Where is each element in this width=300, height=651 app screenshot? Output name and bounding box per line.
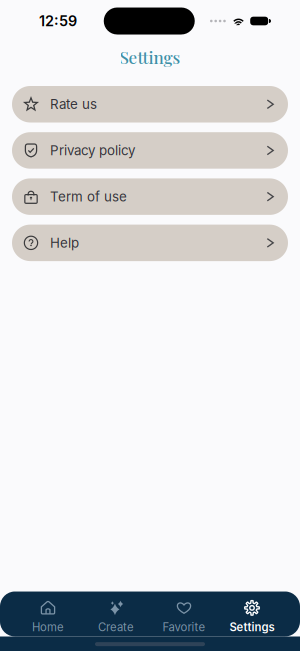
button[interactable]: Rate us xyxy=(12,86,288,122)
button[interactable]: Create xyxy=(82,600,150,634)
button[interactable]: Term of use xyxy=(12,178,288,215)
button[interactable]: Home xyxy=(14,600,82,634)
staticText: Privacy policy xyxy=(50,142,135,158)
staticText: 12:59 xyxy=(39,12,77,30)
staticText: Settings xyxy=(119,46,180,68)
staticText: Help xyxy=(50,235,79,251)
staticText: Create xyxy=(98,620,134,634)
staticText: Home xyxy=(32,620,64,634)
staticText: Favorite xyxy=(162,620,205,634)
staticText: Term of use xyxy=(50,189,127,205)
staticText: Rate us xyxy=(50,96,97,112)
button[interactable]: Help xyxy=(12,225,288,261)
staticText: Settings xyxy=(229,620,274,634)
button[interactable]: Settings xyxy=(218,600,286,634)
button[interactable]: Privacy policy xyxy=(12,132,288,169)
button[interactable]: Favorite xyxy=(150,600,218,634)
